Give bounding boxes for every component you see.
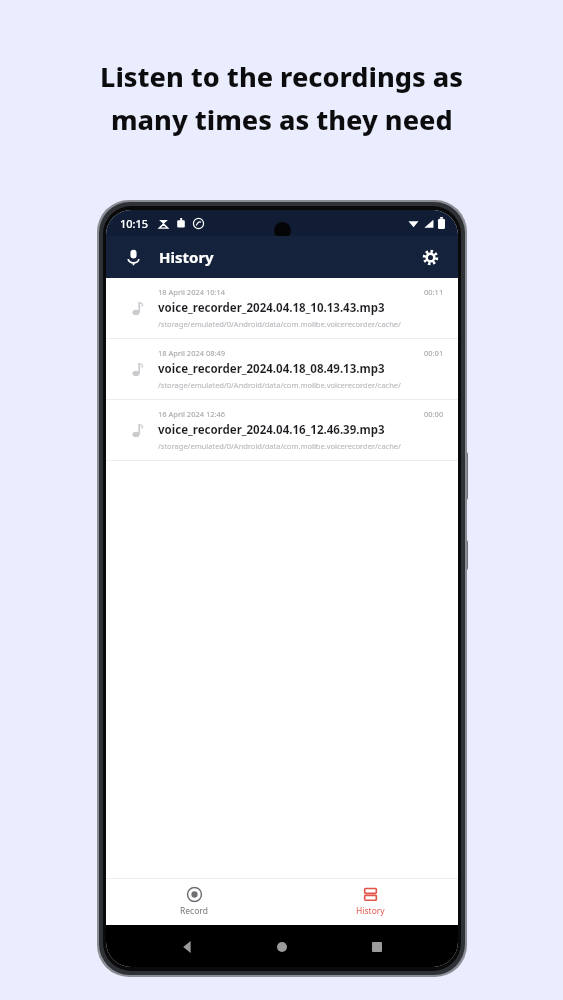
- staticText: History: [159, 247, 214, 267]
- button[interactable]: 16 April 2024 12:46: [106, 400, 458, 461]
- staticText: 18 April 2024 10:14: [158, 287, 424, 297]
- staticText: 00:11: [424, 287, 444, 297]
- staticText: History: [356, 905, 385, 917]
- button[interactable]: Home: [269, 934, 295, 960]
- staticText: 00:01: [424, 348, 444, 358]
- staticText: 18 April 2024 08:49: [158, 348, 424, 358]
- staticText: /storage/emulated/0/Android/data/com.mol…: [158, 319, 401, 329]
- button[interactable]: Record: [120, 244, 146, 270]
- staticText: /storage/emulated/0/Android/data/com.mol…: [158, 380, 401, 390]
- staticText: voice_recorder_2024.04.16_12.46.39.mp3: [158, 422, 385, 438]
- staticText: 16 April 2024 12:46: [158, 409, 424, 419]
- button[interactable]: Record: [106, 879, 282, 925]
- button[interactable]: Settings: [416, 243, 444, 271]
- staticText: Listen to the recordings as: [100, 58, 463, 95]
- staticText: voice_recorder_2024.04.18_08.49.13.mp3: [158, 361, 385, 377]
- staticText: Record: [180, 905, 208, 917]
- button[interactable]: 18 April 2024 10:14: [106, 278, 458, 339]
- staticText: voice_recorder_2024.04.18_10.13.43.mp3: [158, 300, 385, 316]
- button[interactable]: History: [282, 879, 458, 925]
- staticText: many times as they need: [111, 101, 453, 138]
- staticText: 10:15: [120, 216, 149, 231]
- button[interactable]: Recents: [364, 934, 390, 960]
- staticText: 00:00: [424, 409, 444, 419]
- button[interactable]: 18 April 2024 08:49: [106, 339, 458, 400]
- button[interactable]: Back: [175, 934, 201, 960]
- staticText: /storage/emulated/0/Android/data/com.mol…: [158, 441, 401, 451]
